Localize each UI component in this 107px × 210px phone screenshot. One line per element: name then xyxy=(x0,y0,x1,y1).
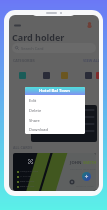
button[interactable]: Share xyxy=(25,115,85,125)
button[interactable]: Add card xyxy=(82,172,91,181)
button[interactable] xyxy=(31,105,97,142)
staticText: INFO@MAIL.COM xyxy=(20,170,38,173)
staticText: JOHN xyxy=(70,160,83,166)
staticText: Edit xyxy=(29,98,37,103)
staticText: +1 234 567 xyxy=(20,175,32,178)
button[interactable]: INFO@MAIL.COM xyxy=(13,153,96,191)
button[interactable] xyxy=(19,72,26,79)
staticText: Hotel Bal Town xyxy=(39,88,71,94)
button[interactable]: Profile xyxy=(87,22,92,28)
staticText: www.site.com xyxy=(20,185,35,188)
staticText: Delete xyxy=(29,108,42,113)
staticText: CATEGORIES xyxy=(13,58,35,63)
button[interactable]: Menu xyxy=(14,23,21,28)
staticText: Search Card xyxy=(21,46,44,51)
button[interactable]: Edit xyxy=(25,95,85,105)
button[interactable] xyxy=(61,72,68,79)
button[interactable] xyxy=(96,72,99,79)
button[interactable] xyxy=(85,72,92,79)
staticText: SMITH xyxy=(83,160,96,166)
staticText: www.site.com xyxy=(20,180,35,183)
button[interactable]: Download xyxy=(25,125,85,134)
button[interactable]: Delete xyxy=(25,105,85,115)
button[interactable] xyxy=(43,72,50,79)
staticText: ALL CARDS xyxy=(13,145,33,150)
staticText: Card holder xyxy=(12,31,65,43)
button[interactable]: VIEW ALL xyxy=(83,58,99,63)
staticText: Share xyxy=(29,118,40,123)
staticText: Download xyxy=(29,127,49,132)
